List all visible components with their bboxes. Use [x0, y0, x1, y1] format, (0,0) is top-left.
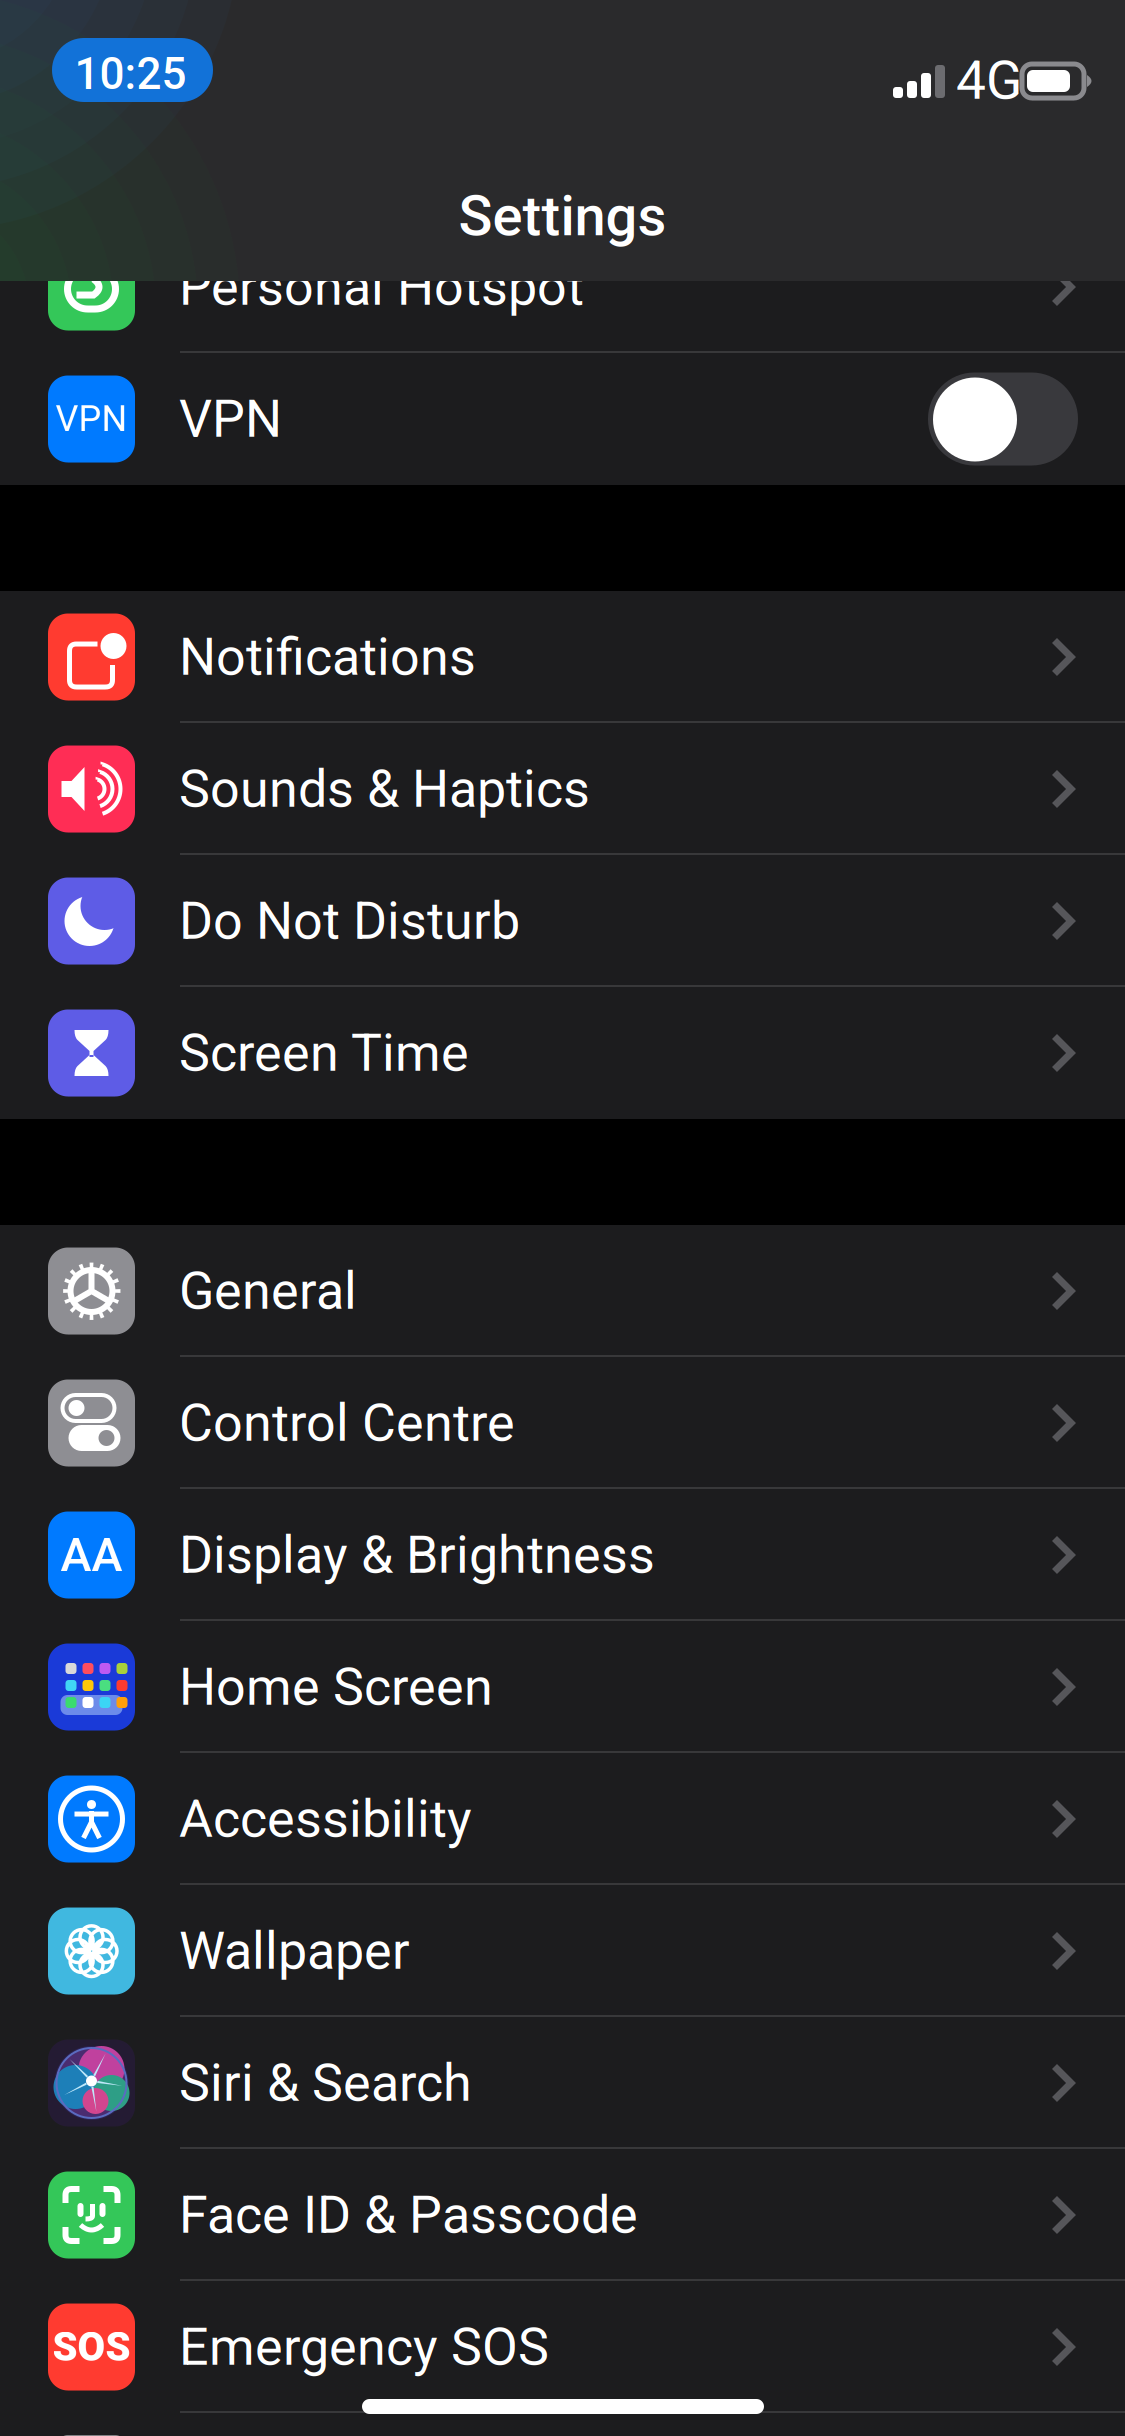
staticText: VPN [55, 398, 127, 440]
staticText: 4G [956, 49, 1022, 112]
button[interactable]: Sounds & Haptics [0, 723, 1125, 855]
staticText: General [179, 1260, 357, 1321]
button[interactable]: Screen Time [0, 987, 1125, 1119]
staticText: Display & Brightness [179, 1524, 655, 1585]
button[interactable]: Exposure Notifications [0, 2413, 1125, 2436]
staticText: Personal Hotspot [179, 256, 584, 317]
button[interactable]: AA [0, 1489, 1125, 1621]
button[interactable]: Siri & Search [0, 2017, 1125, 2149]
button[interactable]: Control Centre [0, 1357, 1125, 1489]
staticText: Wallpaper [179, 1920, 410, 1981]
staticText: Screen Time [179, 1022, 469, 1083]
staticText: AA [60, 1528, 122, 1582]
staticText: VPN [179, 388, 282, 449]
button[interactable]: Notifications [0, 591, 1125, 723]
staticText: Emergency SOS [179, 2316, 549, 2377]
staticText: Face ID & Passcode [179, 2184, 638, 2245]
staticText: Do Not Disturb [179, 890, 520, 951]
staticText: Settings [458, 183, 666, 249]
staticText: Notifications [179, 626, 476, 687]
staticText: SOS [52, 2324, 130, 2370]
staticText: Siri & Search [179, 2052, 472, 2113]
staticText: Home Screen [179, 1656, 493, 1717]
button[interactable]: Wallpaper [0, 1885, 1125, 2017]
button[interactable]: Home Screen [0, 1621, 1125, 1753]
button[interactable]: General [0, 1225, 1125, 1357]
button[interactable]: Accessibility [0, 1753, 1125, 1885]
staticText: Sounds & Haptics [179, 758, 590, 819]
staticText: Control Centre [179, 1392, 515, 1453]
button[interactable]: Personal Hotspot [0, 221, 1125, 353]
button[interactable]: Do Not Disturb [0, 855, 1125, 987]
staticText: Accessibility [179, 1788, 472, 1849]
button[interactable]: VPN [0, 353, 1125, 485]
button[interactable]: Face ID & Passcode [0, 2149, 1125, 2281]
button[interactable]: SOS [0, 2281, 1125, 2413]
staticText: 10:25 [74, 48, 186, 100]
